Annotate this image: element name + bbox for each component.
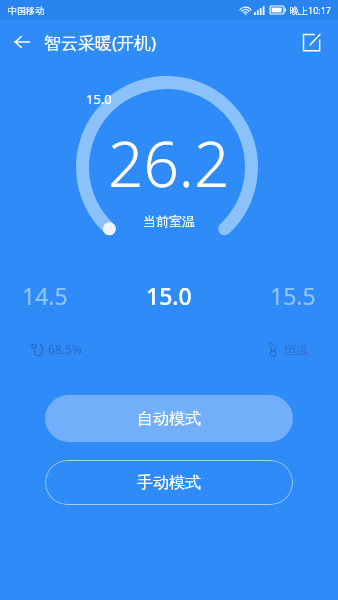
button[interactable]: 手动模式 <box>45 460 293 505</box>
button[interactable]: 自动模式 <box>45 395 293 442</box>
staticText: 15.0 <box>86 90 256 108</box>
button[interactable]: 15.5 <box>270 280 316 311</box>
button[interactable]: Back <box>0 20 44 64</box>
staticText: 26.2 <box>108 121 230 205</box>
staticText: 自动模式 <box>137 409 201 429</box>
button[interactable]: 14.5 <box>22 280 68 311</box>
staticText: 智云采暖(开机) <box>44 31 157 54</box>
staticText: 手动模式 <box>137 473 201 493</box>
staticText: 恒温 <box>284 342 308 357</box>
staticText: 晚上10:17 <box>290 4 332 16</box>
button[interactable]: Edit <box>290 21 332 63</box>
staticText: 当前室温 <box>143 213 195 229</box>
button[interactable]: 68.5% <box>30 341 82 357</box>
button[interactable]: 恒温 <box>266 342 308 357</box>
button[interactable]: 15.0 <box>146 280 192 311</box>
staticText: 68.5% <box>48 341 82 357</box>
staticText: 中国移动 <box>8 5 44 16</box>
